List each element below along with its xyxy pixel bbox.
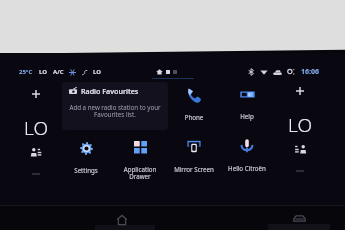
button[interactable]: Decrease temperature xyxy=(26,164,46,184)
button[interactable]: Application Drawer xyxy=(113,132,167,182)
button[interactable]: Home xyxy=(112,210,131,229)
button[interactable]: Phone xyxy=(167,80,221,130)
staticText: Phone xyxy=(167,113,221,121)
staticText: LO xyxy=(39,68,47,76)
staticText: LO xyxy=(288,112,312,138)
button[interactable]: Hello Citroën xyxy=(220,131,274,181)
staticText: Help xyxy=(220,112,274,120)
button[interactable]: Settings xyxy=(59,133,113,183)
staticText: Settings xyxy=(59,166,113,174)
staticText: Application Drawer xyxy=(113,165,167,181)
staticText: A/C xyxy=(53,68,64,76)
staticText: Add a new radio station to your Favourit… xyxy=(62,103,168,119)
button[interactable]: Seat airflow xyxy=(288,137,312,161)
staticText: LO xyxy=(24,115,48,141)
button[interactable]: Mirror Screen xyxy=(167,132,221,182)
staticText: Radio Favourites xyxy=(81,86,139,95)
staticText: Hello Citroën xyxy=(220,164,274,172)
button[interactable]: Seat airflow xyxy=(24,140,48,164)
button[interactable]: Decrease temperature xyxy=(290,161,310,181)
staticText: Mirror Screen xyxy=(167,165,221,173)
button[interactable]: Increase temperature xyxy=(290,81,310,101)
staticText: 16:06 xyxy=(301,67,319,77)
staticText: 25°C xyxy=(19,68,33,76)
button[interactable]: Vehicle xyxy=(289,208,309,228)
staticText: LO xyxy=(93,68,101,76)
button[interactable]: Help xyxy=(220,79,274,129)
button[interactable]: Radio Favourites xyxy=(62,82,168,130)
button[interactable]: Increase temperature xyxy=(26,84,46,104)
